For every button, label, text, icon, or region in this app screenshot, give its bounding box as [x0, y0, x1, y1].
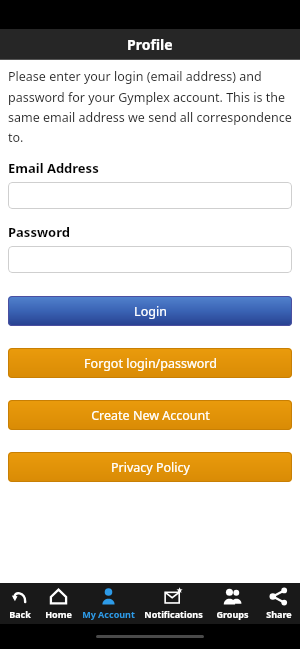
- staticText: Password: [8, 223, 70, 241]
- button[interactable]: Forgot login/password: [8, 348, 292, 378]
- staticText: Privacy Policy: [111, 459, 190, 476]
- button[interactable]: Back: [0, 583, 39, 624]
- staticText: Login: [134, 303, 167, 320]
- button[interactable]: Home: [39, 583, 78, 624]
- button[interactable]: [8, 182, 292, 209]
- button[interactable]: Share: [257, 583, 300, 624]
- staticText: Back: [9, 608, 31, 620]
- staticText: Groups: [216, 608, 249, 620]
- button[interactable]: Privacy Policy: [8, 452, 292, 482]
- button[interactable]: Login: [8, 296, 292, 326]
- staticText: Home: [45, 608, 72, 620]
- staticText: Profile: [127, 35, 173, 54]
- staticText: Share: [266, 608, 292, 620]
- button[interactable]: My Account: [78, 583, 138, 624]
- staticText: Please enter your login (email address) …: [8, 68, 292, 145]
- staticText: Notifications: [144, 608, 203, 620]
- staticText: Forgot login/password: [84, 355, 217, 372]
- staticText: Create New Account: [91, 407, 210, 424]
- button[interactable]: Create New Account: [8, 400, 292, 430]
- button[interactable]: Groups: [208, 583, 257, 624]
- staticText: Email Address: [8, 159, 99, 177]
- button[interactable]: [8, 246, 292, 273]
- button[interactable]: Notifications: [138, 583, 208, 624]
- staticText: My Account: [82, 608, 135, 620]
